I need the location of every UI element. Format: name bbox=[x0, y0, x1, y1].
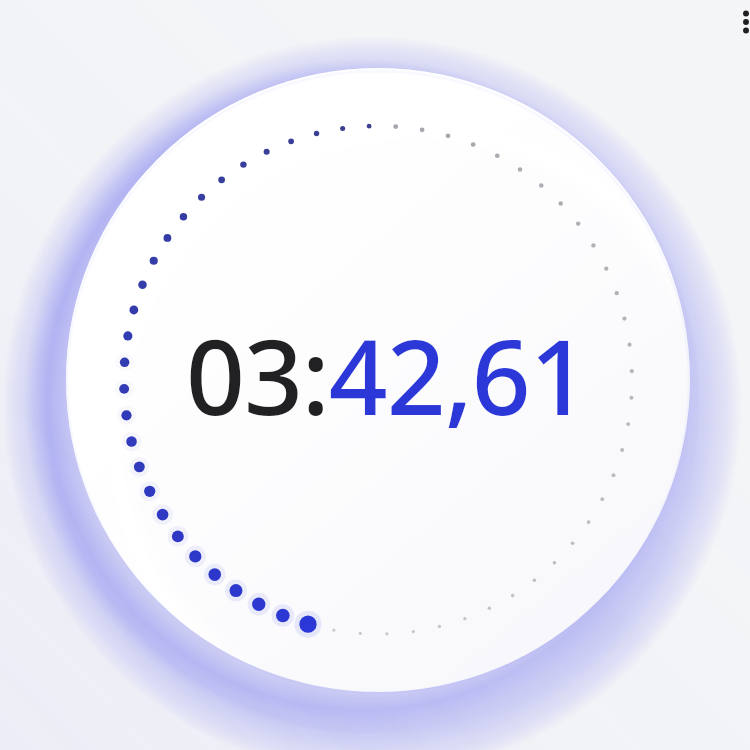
staticText: 03:42,61 bbox=[186, 305, 588, 445]
button[interactable]: More options bbox=[728, 4, 750, 40]
button[interactable]: 03:42,61 bbox=[186, 305, 588, 445]
